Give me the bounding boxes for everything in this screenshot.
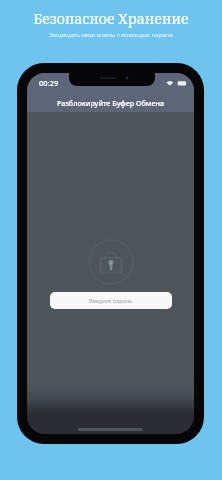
button[interactable]: Введите пароль	[50, 292, 172, 309]
staticText: Введите пароль	[89, 297, 133, 305]
staticText: Разблокируйте Буфер Обмена	[57, 98, 165, 108]
other: Locked clipboard	[88, 239, 134, 285]
staticText: Безопасное Хранение	[33, 9, 189, 28]
staticText: Защищать свои клипы с помощью пароля	[49, 31, 173, 39]
staticText: 00:29	[39, 78, 59, 88]
